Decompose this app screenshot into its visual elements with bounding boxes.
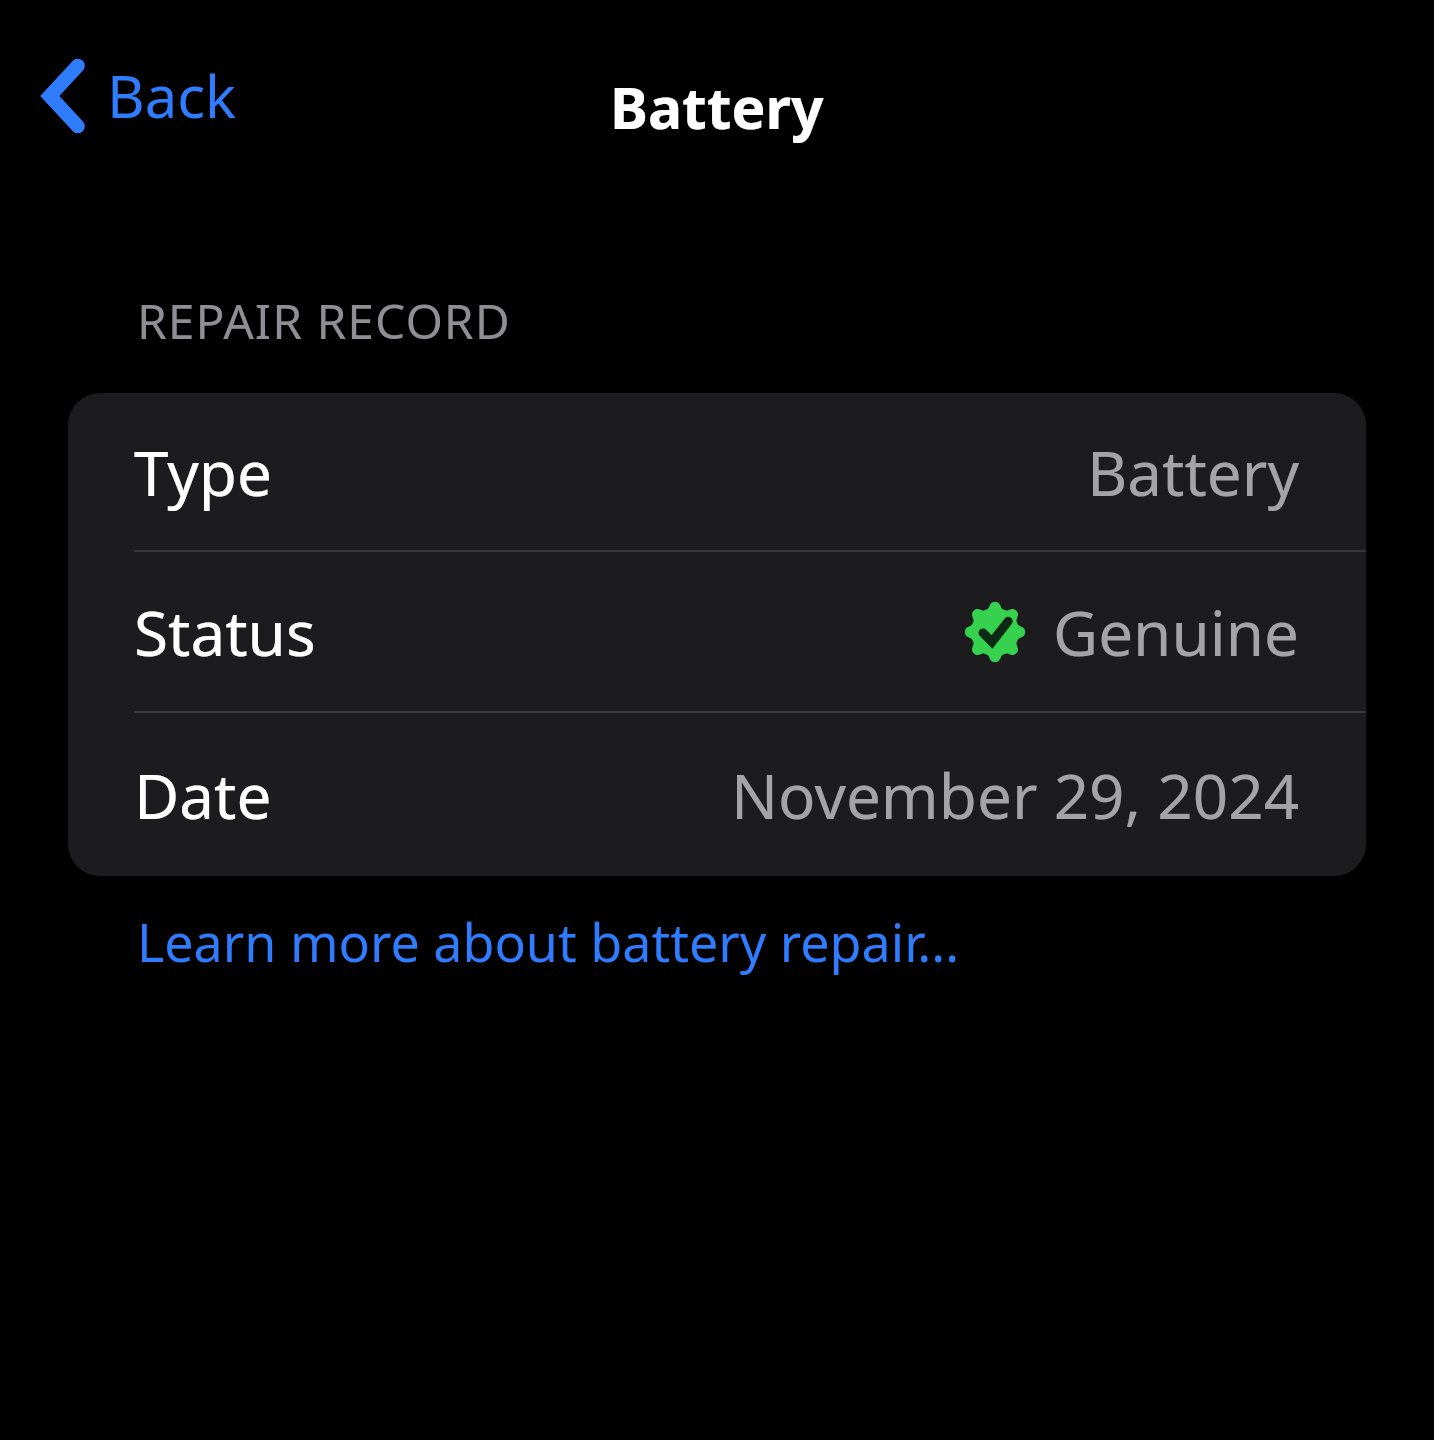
staticText: November 29, 2024 (731, 753, 1300, 837)
staticText: Battery (610, 68, 824, 146)
staticText: Battery (1087, 430, 1300, 514)
staticText: Type (134, 430, 272, 514)
staticText: Learn more about battery repair... (137, 906, 960, 977)
staticText: Date (134, 753, 272, 837)
button[interactable]: Status (68, 552, 1366, 711)
other: Genuine part verified (965, 602, 1025, 662)
button[interactable]: Back (30, 48, 255, 143)
staticText: REPAIR RECORD (137, 288, 511, 353)
button[interactable]: Date (68, 713, 1366, 876)
button[interactable]: Learn more about battery repair... (68, 892, 960, 991)
staticText: Back (107, 56, 237, 135)
staticText: Status (134, 590, 316, 674)
staticText: Genuine (1053, 590, 1300, 674)
button[interactable]: Type (68, 393, 1366, 550)
